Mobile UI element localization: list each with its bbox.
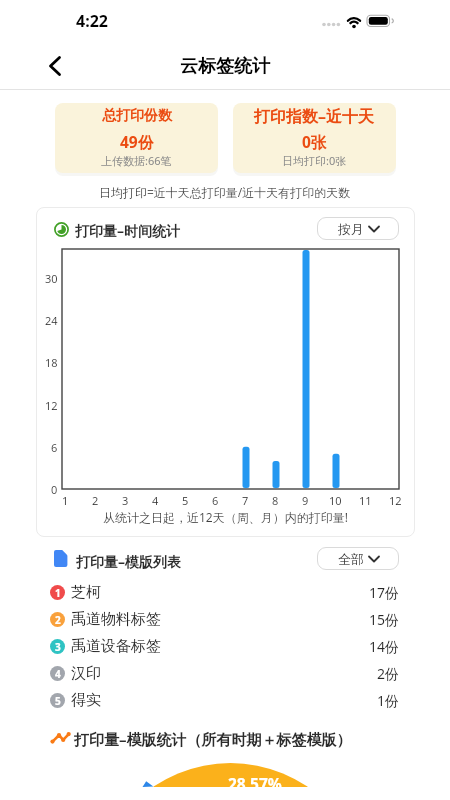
staticText: 4 <box>55 667 61 681</box>
staticText: 3 <box>55 640 61 654</box>
staticText: 云标签统计 <box>180 55 270 78</box>
staticText: 24 <box>45 313 58 328</box>
staticText: 禹道物料标签 <box>71 610 161 629</box>
staticText: 10 <box>329 493 342 508</box>
staticText: 得实 <box>71 691 101 710</box>
staticText: 28.57% <box>228 773 282 787</box>
staticText: 9 <box>302 493 309 508</box>
staticText: 日均打印:0张 <box>282 153 347 168</box>
button[interactable]: 2 <box>42 606 408 633</box>
staticText: 49份 <box>120 131 154 152</box>
button[interactable] <box>38 50 70 80</box>
button[interactable]: 5 <box>42 687 408 714</box>
staticText: 12 <box>389 493 402 508</box>
staticText: 禹道设备标签 <box>71 637 161 656</box>
staticText: 日均打印=近十天总打印量/近十天有打印的天数 <box>99 184 351 200</box>
staticText: 1份 <box>377 691 400 710</box>
staticText: 打印指数–近十天 <box>254 105 375 127</box>
staticText: 上传数据:66笔 <box>101 153 172 168</box>
staticText: 按月 <box>338 221 364 237</box>
staticText: 0 <box>51 482 58 497</box>
staticText: 2 <box>55 613 61 627</box>
staticText: 2份 <box>377 664 400 683</box>
staticText: 15份 <box>369 610 400 629</box>
staticText: 4:22 <box>76 10 108 32</box>
staticText: 17份 <box>369 583 400 602</box>
button[interactable]: 4 <box>42 660 408 687</box>
staticText: 6 <box>212 493 219 508</box>
staticText: 7 <box>242 493 249 508</box>
staticText: 2 <box>92 493 99 508</box>
button[interactable]: 3 <box>42 633 408 660</box>
staticText: 1 <box>62 493 69 508</box>
staticText: 6 <box>51 440 58 455</box>
staticText: 30 <box>45 271 58 286</box>
staticText: 从统计之日起，近12天（周、月）内的打印量! <box>103 509 348 525</box>
staticText: 3 <box>122 493 129 508</box>
staticText: 11 <box>359 493 372 508</box>
staticText: 打印量–模版列表 <box>76 552 181 571</box>
button[interactable]: 按月 <box>317 217 399 240</box>
button[interactable]: 1 <box>42 579 408 606</box>
staticText: 1 <box>55 586 61 600</box>
staticText: 0张 <box>302 131 327 152</box>
staticText: 4 <box>152 493 159 508</box>
staticText: 全部 <box>338 551 364 567</box>
staticText: 打印量–时间统计 <box>75 221 180 240</box>
staticText: 18 <box>45 355 58 370</box>
staticText: 芝柯 <box>71 583 101 602</box>
staticText: 8 <box>272 493 279 508</box>
staticText: 总打印份数 <box>102 107 172 125</box>
staticText: 汉印 <box>71 664 101 683</box>
staticText: 打印量–模版统计（所有时期＋标签模版） <box>74 729 352 749</box>
staticText: 5 <box>55 694 61 708</box>
staticText: 14份 <box>369 637 400 656</box>
staticText: 5 <box>182 493 189 508</box>
staticText: 12 <box>45 398 58 413</box>
button[interactable]: 全部 <box>317 547 399 570</box>
